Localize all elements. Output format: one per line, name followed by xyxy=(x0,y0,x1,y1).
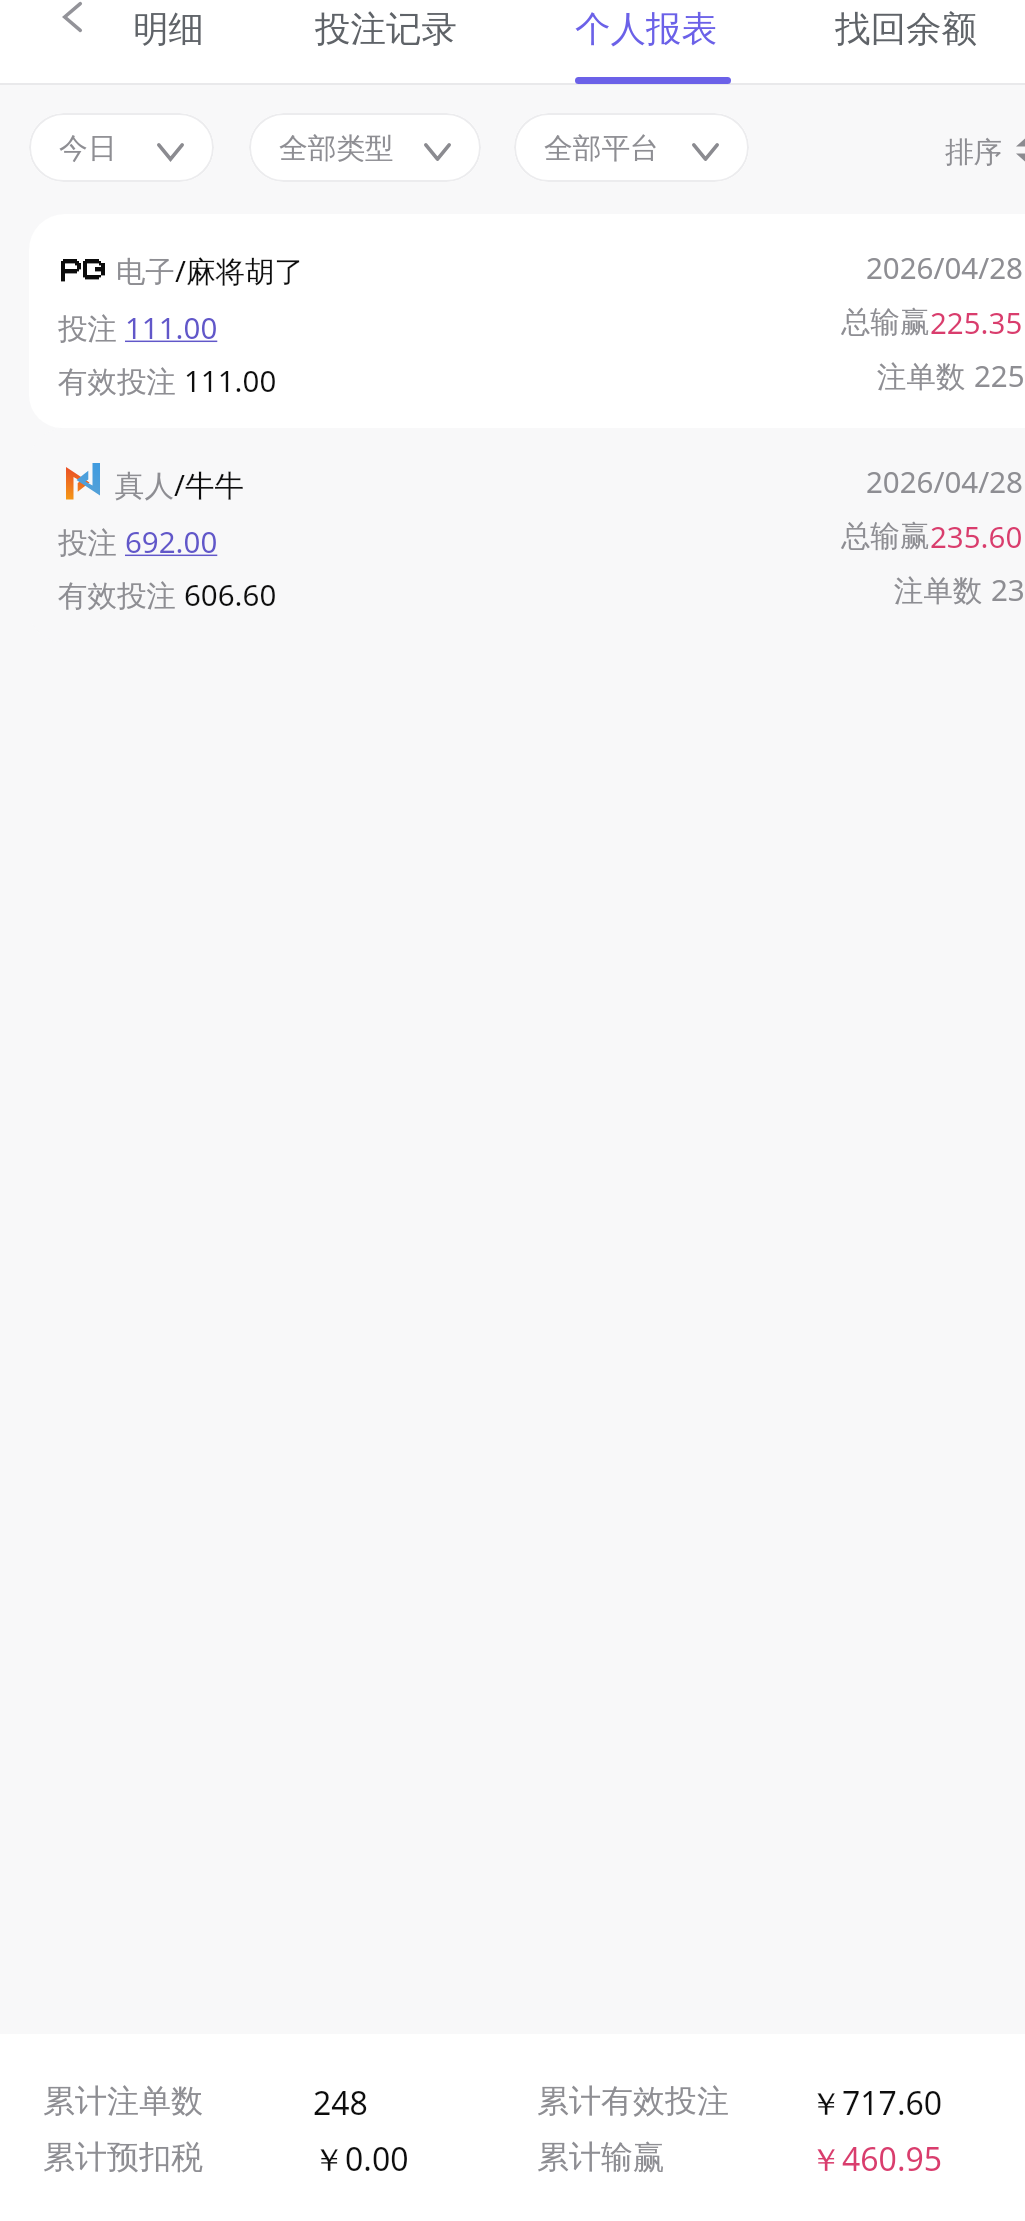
staticText: 投注 xyxy=(58,521,125,561)
staticText: 692.00 xyxy=(125,521,218,561)
staticText: 累计注单数 xyxy=(43,2081,203,2121)
button[interactable]: 真人/牛牛 xyxy=(29,428,1025,642)
button[interactable]: 明细 xyxy=(78,0,258,84)
button[interactable]: 个人报表 xyxy=(556,0,736,84)
button[interactable]: 排序 xyxy=(945,134,1025,170)
staticText: 235.60 xyxy=(930,516,1023,556)
button[interactable]: 今日 xyxy=(29,113,214,182)
staticText: 248 xyxy=(313,2081,368,2125)
staticText: 全部平台 xyxy=(544,130,659,166)
staticText: 投注记录 xyxy=(315,7,457,52)
staticText: ￥0.00 xyxy=(313,2137,409,2181)
button[interactable]: 全部平台 xyxy=(514,113,749,182)
staticText: 累计预扣税 xyxy=(43,2137,203,2177)
staticText: 注单数 xyxy=(877,355,974,395)
staticText: 找回余额 xyxy=(835,7,977,52)
staticText: 23 xyxy=(991,569,1025,609)
button[interactable]: Back xyxy=(34,0,110,70)
button[interactable]: 投注记录 xyxy=(296,0,476,84)
staticText: 累计有效投注 xyxy=(537,2081,729,2121)
button[interactable]: 全部类型 xyxy=(249,113,481,182)
staticText: ￥460.95 xyxy=(810,2137,943,2181)
staticText: 投注 xyxy=(58,307,125,347)
staticText: 总输赢 xyxy=(841,304,930,341)
staticText: 2026/04/28 xyxy=(866,461,1023,501)
staticText: 注单数 xyxy=(894,569,991,609)
staticText: 排序 xyxy=(945,134,1003,170)
staticText: ￥717.60 xyxy=(810,2081,943,2125)
staticText: 225.35 xyxy=(930,302,1023,342)
button[interactable]: 找回余额 xyxy=(816,0,996,84)
staticText: 全部类型 xyxy=(279,130,394,166)
staticText: 真人/牛牛 xyxy=(115,464,244,504)
staticText: 225 xyxy=(974,355,1025,395)
staticText: 606.60 xyxy=(184,574,277,614)
staticText: 今日 xyxy=(59,130,117,166)
staticText: 明细 xyxy=(133,7,204,52)
staticText: 有效投注 xyxy=(58,360,184,400)
button[interactable]: 电子/麻将胡了 xyxy=(29,214,1025,428)
staticText: 总输赢 xyxy=(841,518,930,555)
staticText: 有效投注 xyxy=(58,574,184,614)
staticText: 个人报表 xyxy=(575,7,717,52)
staticText: 电子/麻将胡了 xyxy=(116,250,304,290)
staticText: 111.00 xyxy=(184,360,277,400)
staticText: 2026/04/28 xyxy=(866,247,1023,287)
staticText: 111.00 xyxy=(125,307,218,347)
staticText: 累计输赢 xyxy=(537,2137,665,2177)
